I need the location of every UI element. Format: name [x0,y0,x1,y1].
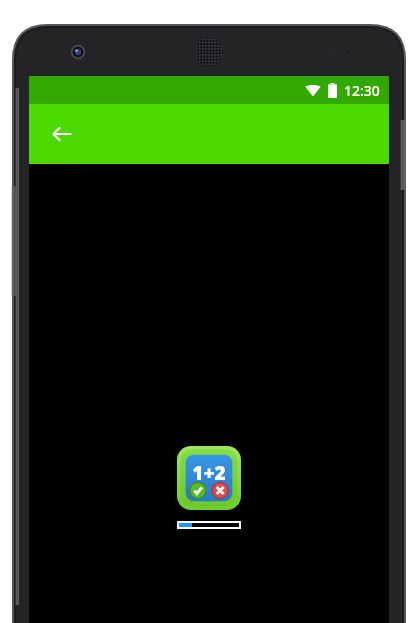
button[interactable]: Back [44,116,80,152]
staticText: 1+2 [192,460,226,486]
button[interactable]: App icon [177,446,241,510]
staticText: 12:30 [344,81,380,100]
